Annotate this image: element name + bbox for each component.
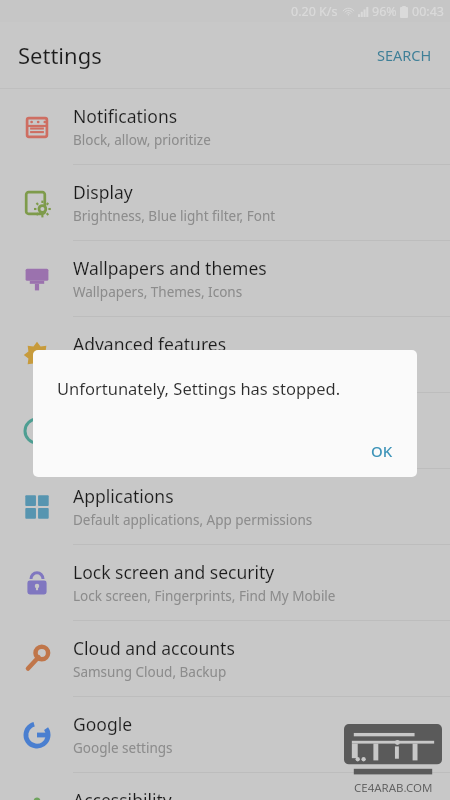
staticText: Lock screen, Fingerprints, Find My Mobil… [73,587,336,605]
staticText: Wallpapers and themes [73,256,267,280]
staticText: Google [73,712,133,736]
staticText: 0.20 K/s [291,3,338,20]
staticText: Block, allow, prioritize [73,131,211,149]
staticText: Display [73,180,133,204]
button[interactable]: Lock screen and security [0,545,450,620]
staticText: Lock screen and security [73,560,275,584]
staticText: Notifications [73,104,178,128]
button[interactable]: Accessibility [0,773,450,800]
button[interactable]: Advanced features [0,317,450,392]
staticText: Settings [18,40,102,70]
staticText: Wallpapers, Themes, Icons [73,283,243,301]
staticText: Unfortunately, Settings has stopped. [57,377,341,399]
button[interactable]: Cloud and accounts [0,621,450,696]
staticText: 96% [372,3,397,20]
staticText: Applications [73,484,174,508]
button[interactable]: Applications [0,469,450,544]
staticText: Cloud and accounts [73,636,235,660]
staticText: OK [371,441,393,461]
button[interactable]: OK [347,425,417,477]
staticText: Brightness, Blue light filter, Font [73,207,276,225]
button[interactable]: SEARCH [359,31,450,79]
button[interactable]: Device maintenance [0,393,450,468]
button[interactable]: Google [0,697,450,772]
staticText: Default applications, App permissions [73,511,313,529]
staticText: Google settings [73,739,173,757]
staticText: 00:43 [412,3,444,20]
staticText: SEARCH [377,45,432,65]
staticText: CE4ARAB.COM [354,780,433,796]
button[interactable]: Notifications [0,89,450,164]
staticText: Accessibility [73,788,172,800]
button[interactable]: Display [0,165,450,240]
staticText: Advanced features [73,332,227,356]
staticText: Samsung Cloud, Backup [73,663,227,681]
button[interactable]: Wallpapers and themes [0,241,450,316]
